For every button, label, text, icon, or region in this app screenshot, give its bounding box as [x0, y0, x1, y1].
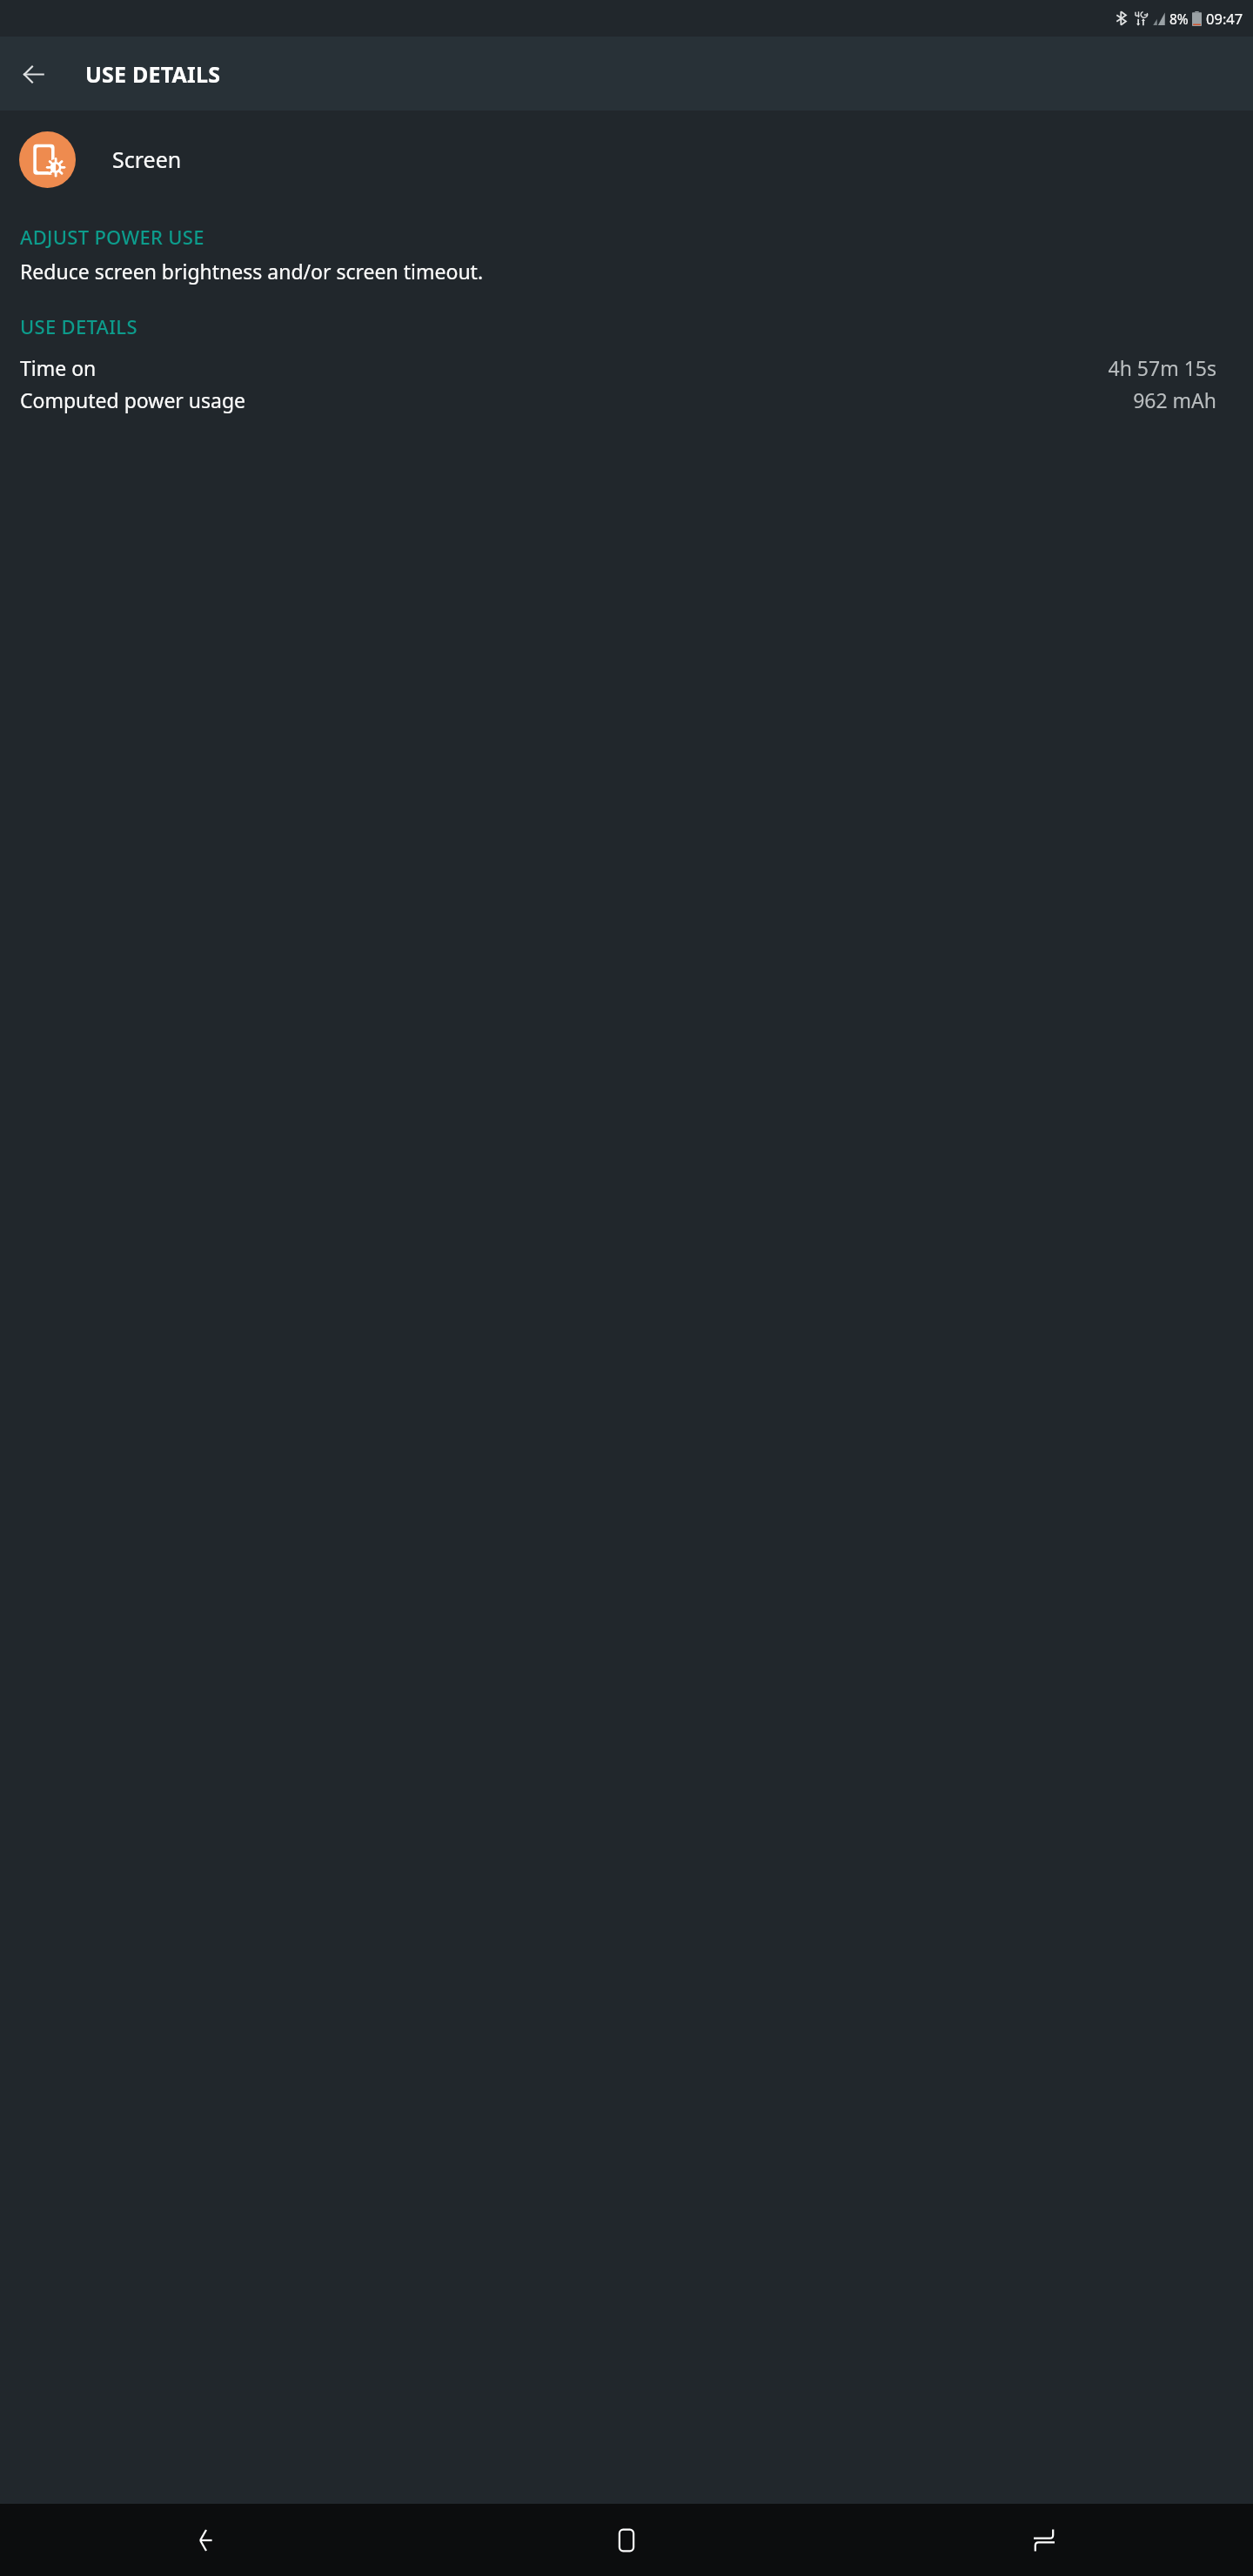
staticText: 962 mAh [1133, 386, 1216, 413]
button[interactable]: Time on [0, 354, 1253, 381]
button[interactable]: Back [12, 53, 54, 95]
staticText: Reduce screen brightness and/or screen t… [20, 258, 1180, 285]
button[interactable]: Recents [835, 2504, 1253, 2576]
staticText: ADJUST POWER USE [20, 224, 1253, 250]
staticText: 4h 57m 15s [1108, 354, 1216, 381]
staticText: USE DETAILS [85, 59, 221, 89]
staticText: 8% [1169, 10, 1189, 28]
staticText: Time on [20, 354, 97, 381]
button[interactable]: Computed power usage [0, 386, 1253, 413]
staticText: Screen [112, 144, 182, 174]
button[interactable]: Home [418, 2504, 835, 2576]
button[interactable]: Back [0, 2504, 418, 2576]
staticText: Computed power usage [20, 386, 246, 413]
staticText: 09:47 [1206, 9, 1243, 28]
staticText: USE DETAILS [20, 313, 1253, 339]
